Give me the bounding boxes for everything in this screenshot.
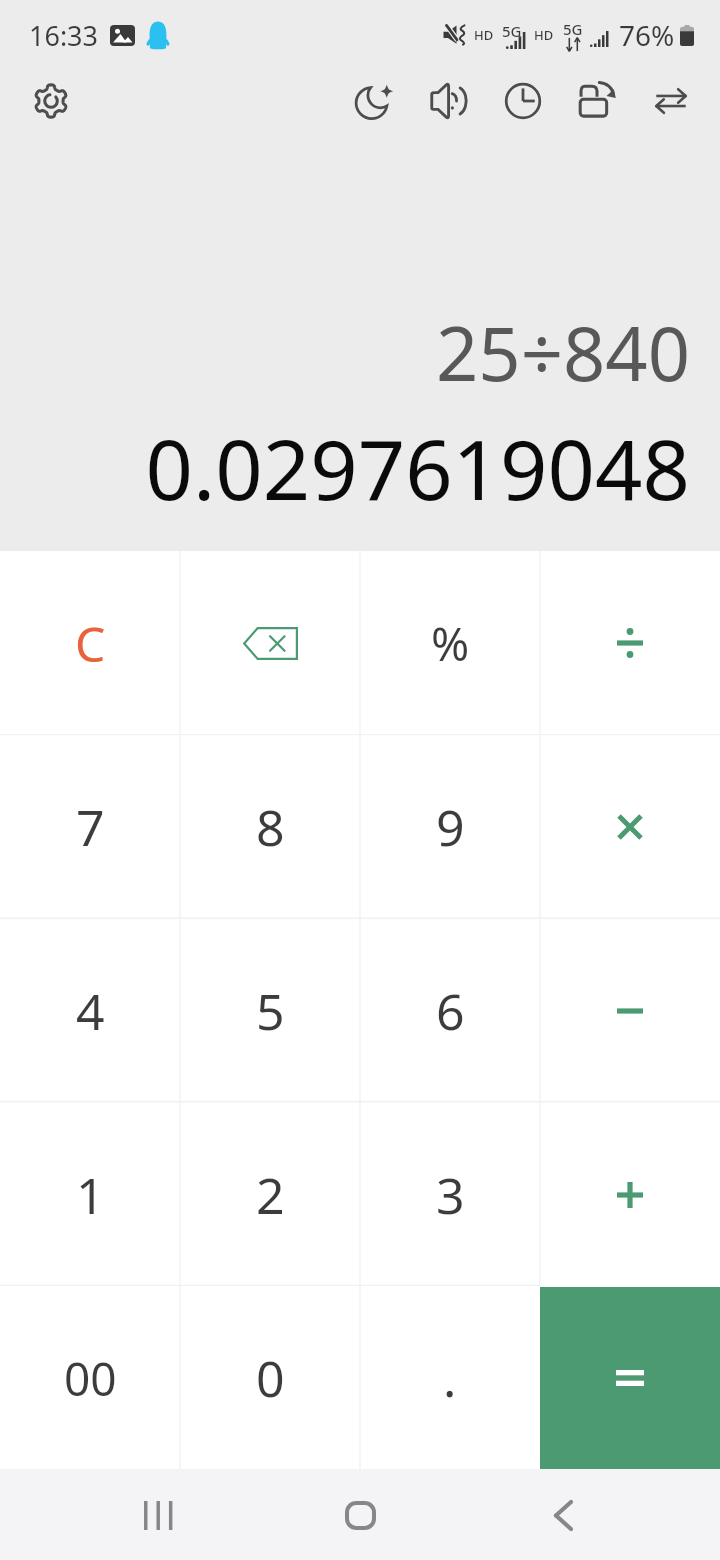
button[interactable]: 5 xyxy=(180,919,360,1103)
staticText: % xyxy=(431,612,470,675)
staticText: C xyxy=(75,611,106,676)
staticText: 16:33 xyxy=(29,17,99,54)
staticText: 5G xyxy=(563,19,583,39)
staticText: 76% xyxy=(619,16,675,54)
staticText: HD xyxy=(474,26,494,44)
staticText: 5 xyxy=(256,977,285,1045)
staticText: 7 xyxy=(76,793,105,861)
staticText: 3 xyxy=(436,1161,465,1229)
button[interactable]: Subtract xyxy=(540,919,720,1103)
staticText: 2 xyxy=(256,1161,285,1229)
button[interactable]: Recent apps xyxy=(113,1470,203,1560)
button[interactable]: % xyxy=(360,551,540,735)
button[interactable]: Home xyxy=(315,1470,405,1560)
button[interactable]: C xyxy=(0,551,180,735)
button[interactable]: Unit converter xyxy=(634,68,708,134)
button[interactable]: History xyxy=(486,68,560,134)
staticText: 25÷840 xyxy=(0,302,690,403)
button[interactable]: 00 xyxy=(0,1287,180,1469)
button[interactable]: Back xyxy=(518,1470,608,1560)
button[interactable]: Multiply xyxy=(540,735,720,919)
staticText: 1 xyxy=(76,1161,105,1229)
staticText: 8 xyxy=(256,793,285,861)
staticText: 4 xyxy=(76,977,105,1045)
button[interactable]: Backspace xyxy=(180,551,360,735)
staticText: 0 xyxy=(256,1344,285,1412)
staticText: 00 xyxy=(64,1347,117,1410)
staticText: HD xyxy=(534,26,554,44)
button[interactable]: Settings xyxy=(18,68,84,134)
staticText: 0.0297619048 xyxy=(0,411,690,524)
staticText: 9 xyxy=(436,793,465,861)
button[interactable]: 8 xyxy=(180,735,360,919)
button[interactable]: 7 xyxy=(0,735,180,919)
button[interactable]: Sound xyxy=(412,68,486,134)
button[interactable]: Rotate screen xyxy=(560,68,634,134)
button[interactable]: Night mode xyxy=(338,68,412,134)
button[interactable]: . xyxy=(360,1287,540,1469)
button[interactable]: Divide xyxy=(540,551,720,735)
staticText: 5G xyxy=(502,21,522,41)
staticText: . xyxy=(443,1344,457,1412)
button[interactable]: 0 xyxy=(180,1287,360,1469)
staticText: 6 xyxy=(436,977,465,1045)
button[interactable] xyxy=(540,1287,720,1469)
button[interactable]: Add xyxy=(540,1103,720,1287)
button[interactable]: 2 xyxy=(180,1103,360,1287)
button[interactable]: 3 xyxy=(360,1103,540,1287)
button[interactable]: 1 xyxy=(0,1103,180,1287)
button[interactable]: 4 xyxy=(0,919,180,1103)
button[interactable]: 6 xyxy=(360,919,540,1103)
button[interactable]: 9 xyxy=(360,735,540,919)
